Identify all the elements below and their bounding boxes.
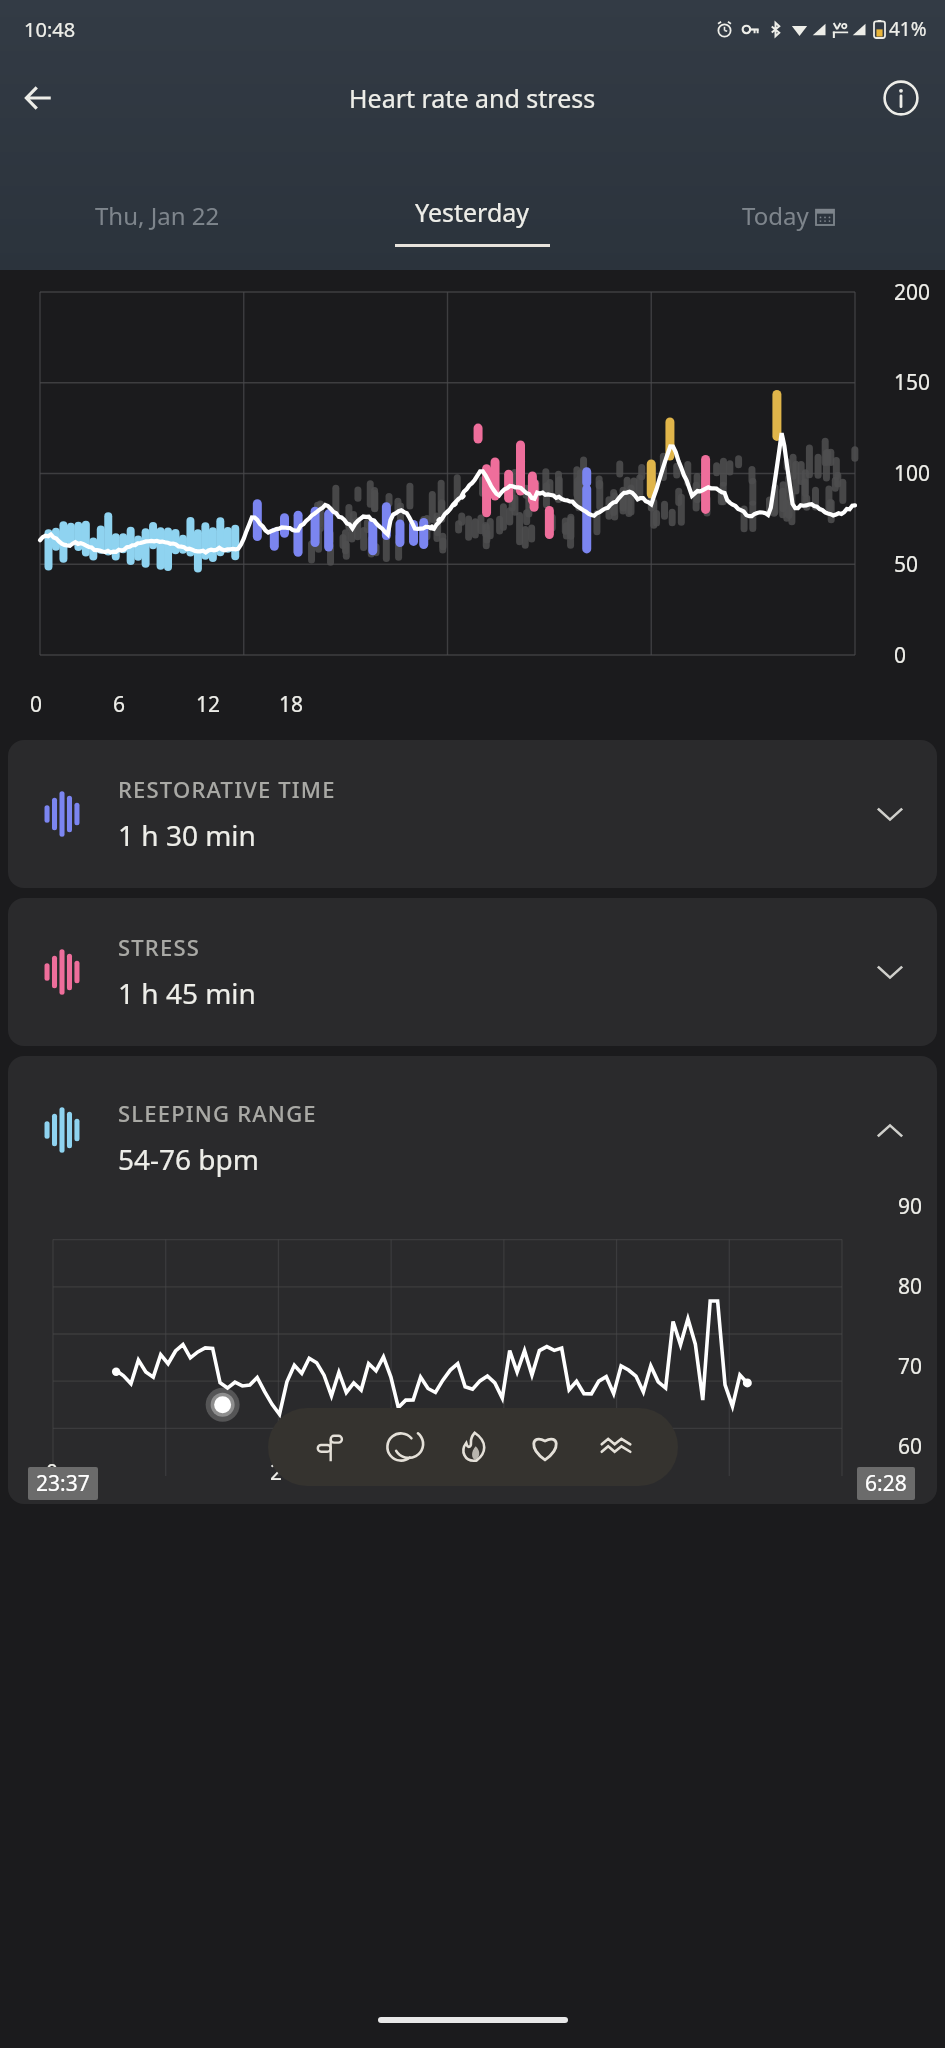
staticText: 1 h 30 min [118, 816, 256, 854]
staticText: 150 [894, 368, 931, 397]
staticText: 1 h 45 min [118, 974, 256, 1012]
staticText: STRESS [118, 932, 201, 962]
staticText: 100 [894, 459, 931, 488]
staticText: 80 [898, 1272, 923, 1301]
staticText: Thu, Jan 22 [95, 199, 220, 232]
staticText: 6:28 [865, 1469, 907, 1498]
button[interactable]: Sleep stages [302, 1419, 358, 1475]
staticText: Heart rate and stress [349, 81, 596, 115]
button[interactable]: STRESS [8, 898, 937, 1046]
staticText: 18 [279, 690, 304, 719]
staticText: 41% [889, 16, 927, 42]
staticText: 23:37 [36, 1469, 90, 1498]
button[interactable]: SLEEPING RANGE [8, 1056, 937, 1504]
button[interactable]: Collapse [867, 1108, 913, 1154]
staticText: RESTORATIVE TIME [118, 774, 336, 804]
button[interactable]: Breathing [588, 1419, 644, 1475]
staticText: 0 [30, 690, 43, 719]
button[interactable]: RESTORATIVE TIME [8, 740, 937, 888]
button[interactable]: Expand [867, 949, 913, 995]
staticText: Today [742, 199, 809, 232]
button[interactable]: Back [10, 69, 68, 127]
staticText: 12 [196, 690, 221, 719]
staticText: 0 [894, 641, 907, 670]
staticText: 6 [113, 690, 126, 719]
staticText: 2 [270, 1458, 283, 1487]
button[interactable]: Info [873, 70, 929, 126]
button[interactable]: Yesterday [315, 185, 630, 259]
button[interactable]: Sleep [373, 1419, 429, 1475]
staticText: 90 [898, 1192, 923, 1221]
button[interactable]: Thu, Jan 22 [0, 185, 315, 245]
staticText: 10:48 [24, 16, 76, 43]
button[interactable]: Today [630, 185, 945, 245]
staticText: 54-76 bpm [118, 1140, 259, 1178]
button[interactable]: Calories [445, 1419, 501, 1475]
button[interactable]: Expand [867, 791, 913, 837]
staticText: 50 [894, 550, 919, 579]
staticText: Yesterday [415, 195, 530, 229]
staticText: 0 [46, 1458, 59, 1487]
button[interactable]: Heart rate [517, 1419, 573, 1475]
staticText: 200 [894, 278, 931, 307]
staticText: 70 [898, 1352, 923, 1381]
staticText: SLEEPING RANGE [118, 1098, 317, 1128]
staticText: 60 [898, 1432, 923, 1461]
